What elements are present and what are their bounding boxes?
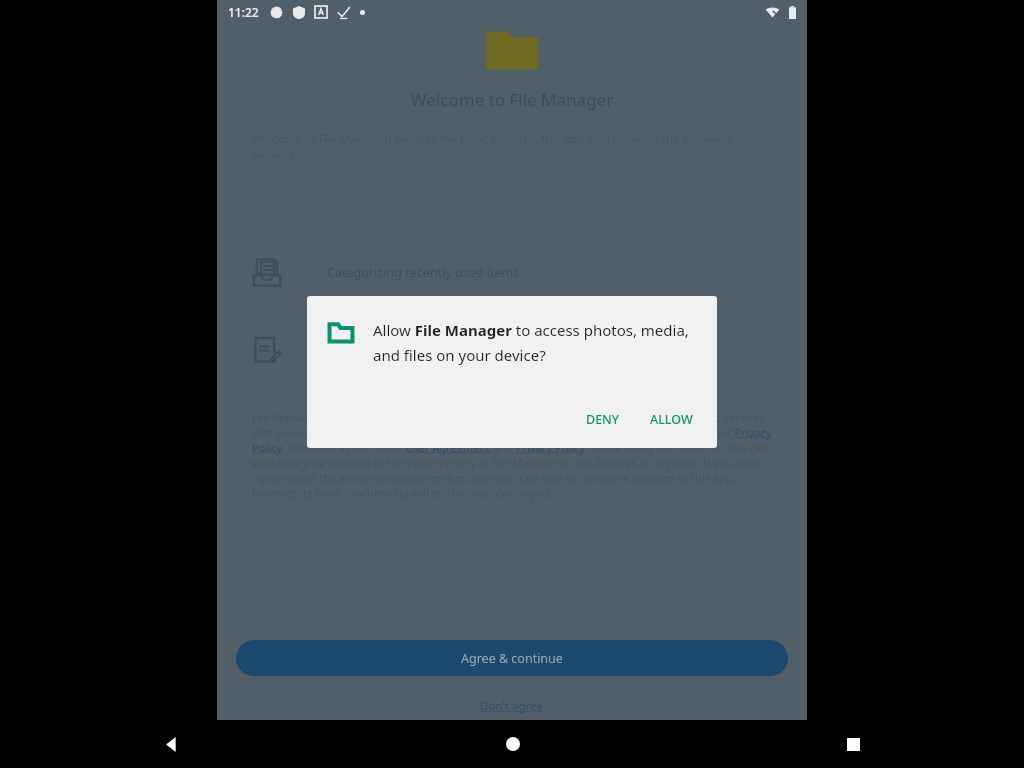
staticText: Don't agree: [480, 698, 544, 714]
staticText: ALLOW: [650, 411, 693, 428]
staticText: 11:22: [228, 4, 259, 20]
staticText: Categorizing recently used items: [327, 264, 520, 281]
staticText: Allow File Manager to access photos, med…: [373, 320, 695, 365]
staticText: File Manager needs to collect necessary …: [252, 410, 772, 500]
staticText: Welcome to File Manager: [217, 88, 807, 111]
button[interactable]: Home: [342, 720, 683, 768]
button[interactable]: Back: [0, 720, 342, 768]
button[interactable]: ALLOW: [642, 405, 701, 434]
button[interactable]: Agree & continue: [236, 640, 788, 676]
staticText: Agree & continue: [461, 650, 563, 667]
button[interactable]: Don't agree: [480, 698, 544, 714]
staticText: DENY: [586, 411, 620, 428]
staticText: Editing documents: [327, 342, 438, 359]
button[interactable]: DENY: [578, 405, 628, 434]
button[interactable]: Recents: [683, 720, 1024, 768]
